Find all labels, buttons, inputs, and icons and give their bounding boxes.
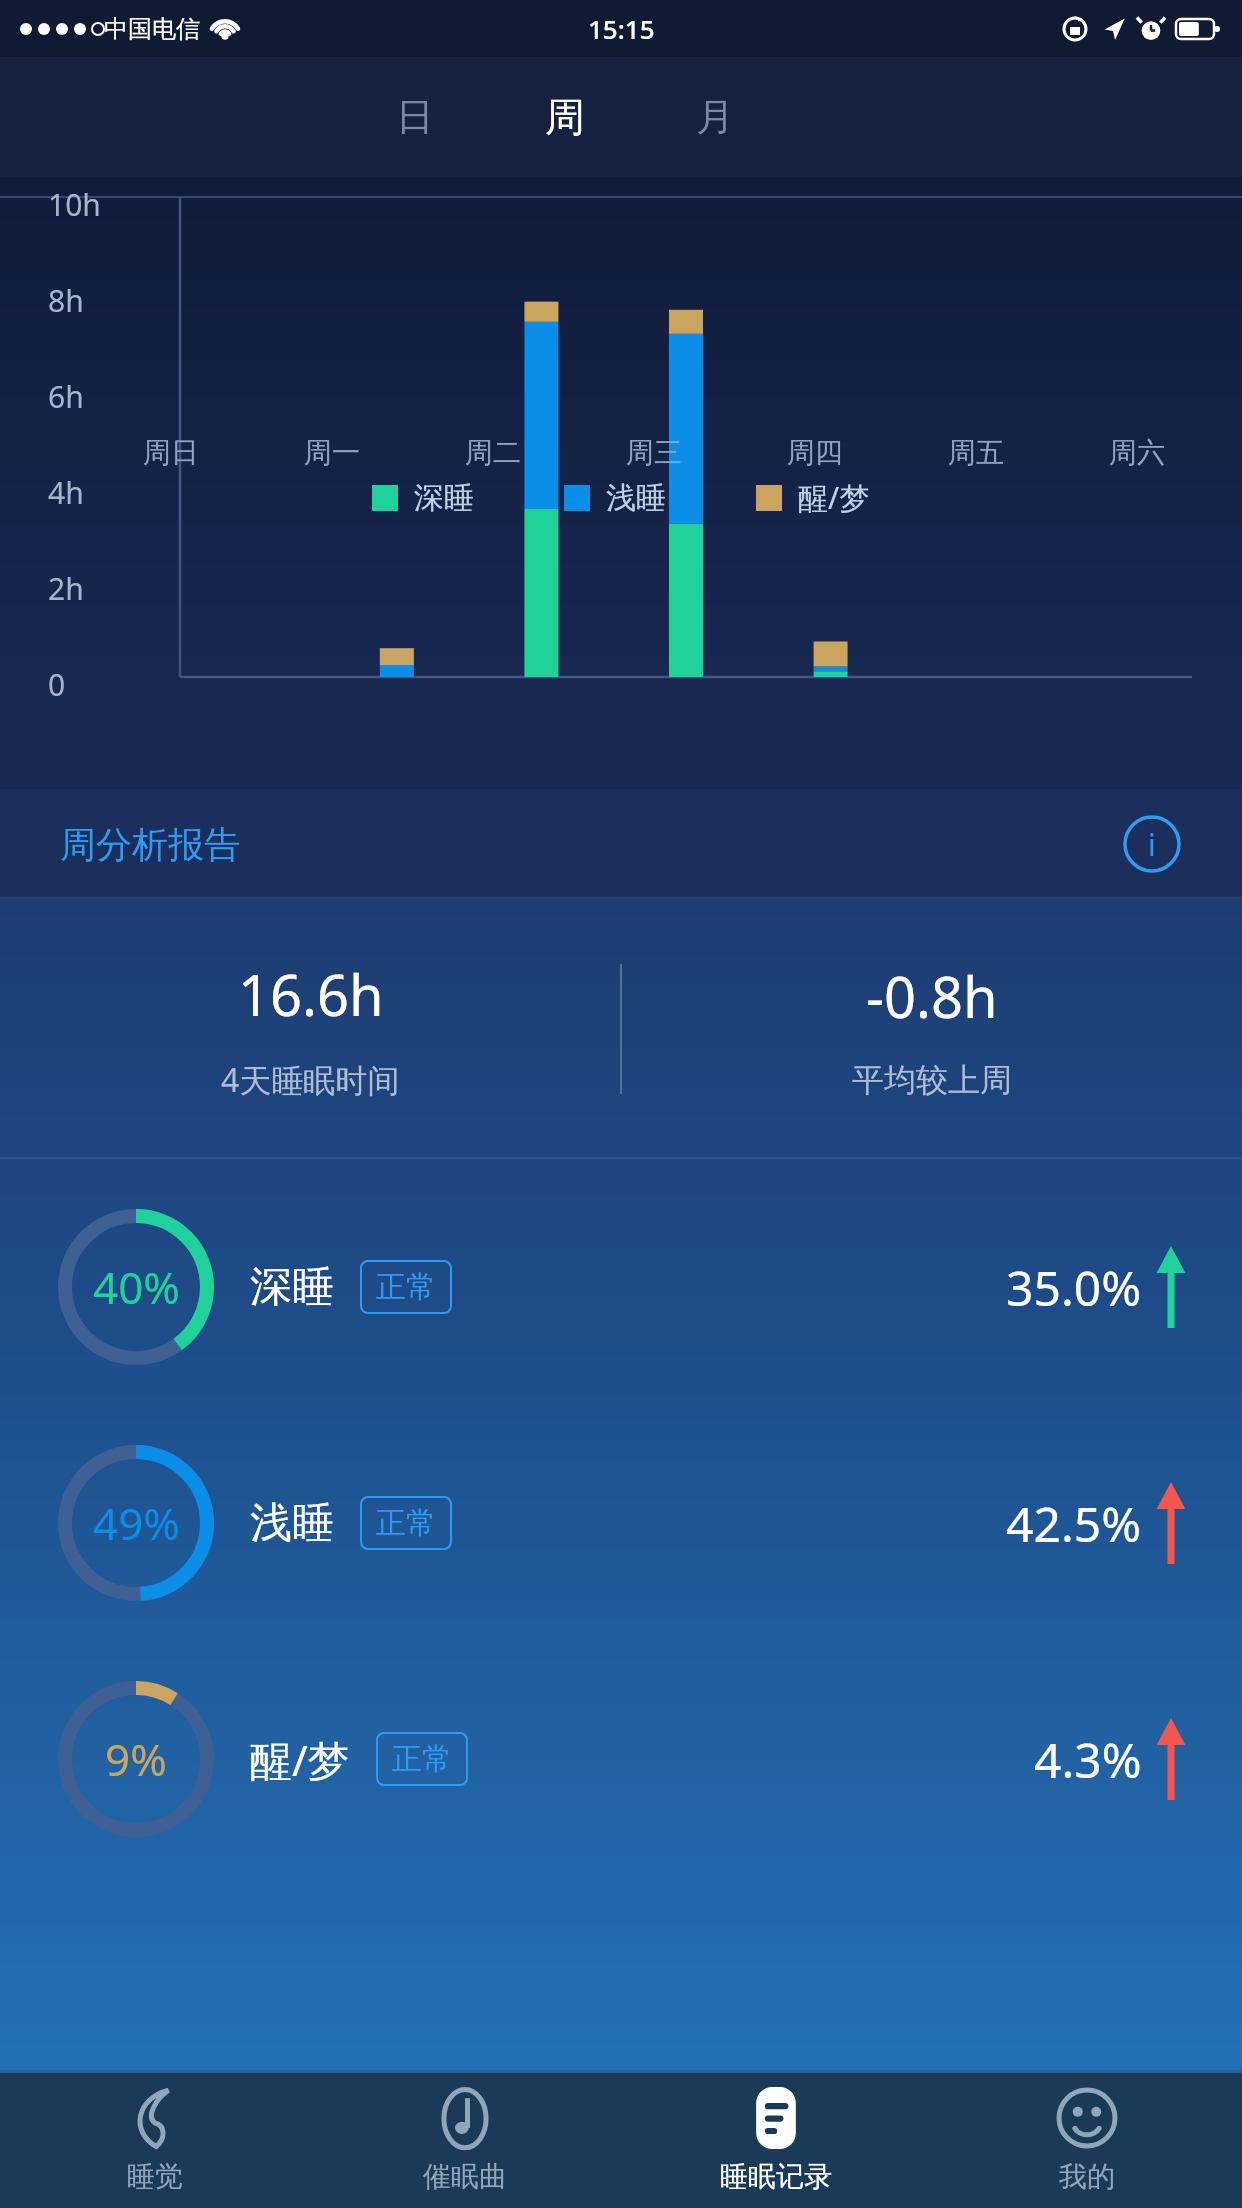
staticText: 中国电信	[104, 14, 200, 44]
button[interactable]: 月	[640, 57, 790, 177]
staticText: 浅睡	[250, 1497, 334, 1550]
staticText: 35.0%	[1006, 1255, 1142, 1320]
staticText: 周	[545, 92, 585, 142]
staticText: 醒/梦	[798, 477, 870, 518]
staticText: 42.5%	[1006, 1491, 1142, 1556]
button[interactable]: 睡眠记录	[620, 2073, 931, 2208]
button[interactable]: 周分析报告	[0, 789, 1242, 899]
button[interactable]: 周	[490, 57, 640, 177]
staticText: -0.8h	[866, 958, 998, 1034]
staticText: 9%	[105, 1729, 167, 1789]
button[interactable]: 说明	[1122, 814, 1182, 874]
staticText: 正常	[376, 1504, 436, 1542]
staticText: 我的	[1059, 2159, 1115, 2194]
staticText: 周六	[1109, 435, 1165, 470]
staticText: 周二	[465, 435, 521, 470]
staticText: 4天睡眠时间	[221, 1058, 400, 1102]
button[interactable]: 我的	[931, 2073, 1242, 2208]
staticText: 6h	[48, 376, 84, 417]
staticText: 0	[48, 664, 66, 705]
button[interactable]: 睡觉	[0, 2073, 310, 2208]
staticText: 睡觉	[127, 2159, 183, 2194]
staticText: 周四	[787, 435, 843, 470]
staticText: 正常	[392, 1740, 452, 1778]
button[interactable]: 40%	[56, 1169, 1186, 1405]
staticText: 周日	[143, 435, 199, 470]
staticText: 睡眠记录	[720, 2159, 832, 2194]
staticText: 40%	[93, 1257, 180, 1317]
button[interactable]: 日	[340, 57, 490, 177]
staticText: 催眠曲	[423, 2159, 507, 2194]
staticText: 周分析报告	[60, 822, 240, 867]
staticText: 醒/梦	[250, 1731, 350, 1788]
staticText: 月	[696, 93, 734, 141]
staticText: 浅睡	[606, 479, 666, 517]
staticText: 16.6h	[238, 956, 384, 1032]
staticText: 15:15	[588, 11, 655, 46]
staticText: 10h	[48, 184, 101, 225]
button[interactable]: 49%	[56, 1405, 1186, 1641]
button[interactable]: 9%	[56, 1641, 1186, 1877]
staticText: 49%	[93, 1493, 180, 1553]
button[interactable]: 催眠曲	[310, 2073, 620, 2208]
staticText: 8h	[48, 280, 84, 321]
staticText: 周一	[304, 435, 360, 470]
staticText: 深睡	[250, 1261, 334, 1314]
staticText: 周五	[948, 435, 1004, 470]
staticText: 平均较上周	[852, 1060, 1012, 1100]
staticText: 深睡	[414, 479, 474, 517]
staticText: 正常	[376, 1268, 436, 1306]
staticText: 周三	[626, 435, 682, 470]
staticText: 日	[396, 93, 434, 141]
staticText: 4.3%	[1034, 1727, 1142, 1792]
staticText: 4h	[48, 472, 84, 513]
staticText: i	[1148, 824, 1156, 865]
staticText: 2h	[48, 568, 84, 609]
